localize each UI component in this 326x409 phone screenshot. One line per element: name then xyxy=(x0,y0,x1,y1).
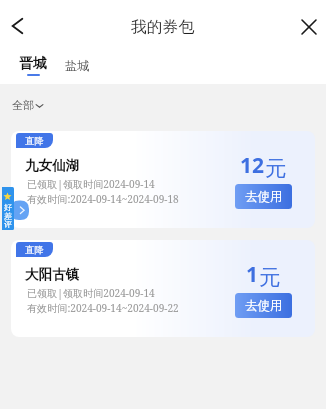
staticText: 去使用 xyxy=(245,189,283,205)
button[interactable]: 晋城 xyxy=(19,55,47,76)
staticText: 有效时间:2024-09-14~2024-09-22 xyxy=(27,301,179,315)
staticText: 晋城 xyxy=(19,55,47,73)
staticText: 元 xyxy=(259,264,281,291)
staticText: 我的券包 xyxy=(131,17,195,37)
staticText: 去使用 xyxy=(245,298,283,314)
staticText: 好 xyxy=(4,202,13,212)
button[interactable]: Close xyxy=(295,13,323,41)
staticText: 差 xyxy=(4,211,13,221)
staticText: 盐城 xyxy=(65,58,89,73)
staticText: 已领取|领取时间2024-09-14 xyxy=(27,286,155,300)
staticText: 大阳古镇 xyxy=(25,266,80,283)
staticText: 1 xyxy=(246,260,259,289)
staticText: 已领取|领取时间2024-09-14 xyxy=(27,177,155,191)
button[interactable]: 去使用 xyxy=(235,184,292,209)
button[interactable]: 直降 xyxy=(11,131,315,228)
staticText: 九女仙湖 xyxy=(25,157,80,174)
button[interactable]: Feedback xyxy=(2,187,14,230)
button[interactable]: 直降 xyxy=(11,240,315,337)
button[interactable]: Back xyxy=(3,12,31,40)
button[interactable]: 盐城 xyxy=(65,55,89,70)
button[interactable]: Expand feedback panel xyxy=(2,187,29,230)
staticText: 有效时间:2024-09-14~2024-09-18 xyxy=(27,192,179,206)
button[interactable]: 全部 xyxy=(12,98,44,112)
staticText: 元 xyxy=(265,155,287,182)
staticText: 12 xyxy=(240,151,265,180)
staticText: 直降 xyxy=(25,244,44,256)
staticText: 全部 xyxy=(12,98,34,112)
staticText: 评 xyxy=(4,219,13,229)
staticText: 直降 xyxy=(25,135,44,147)
button[interactable]: 去使用 xyxy=(235,293,292,318)
